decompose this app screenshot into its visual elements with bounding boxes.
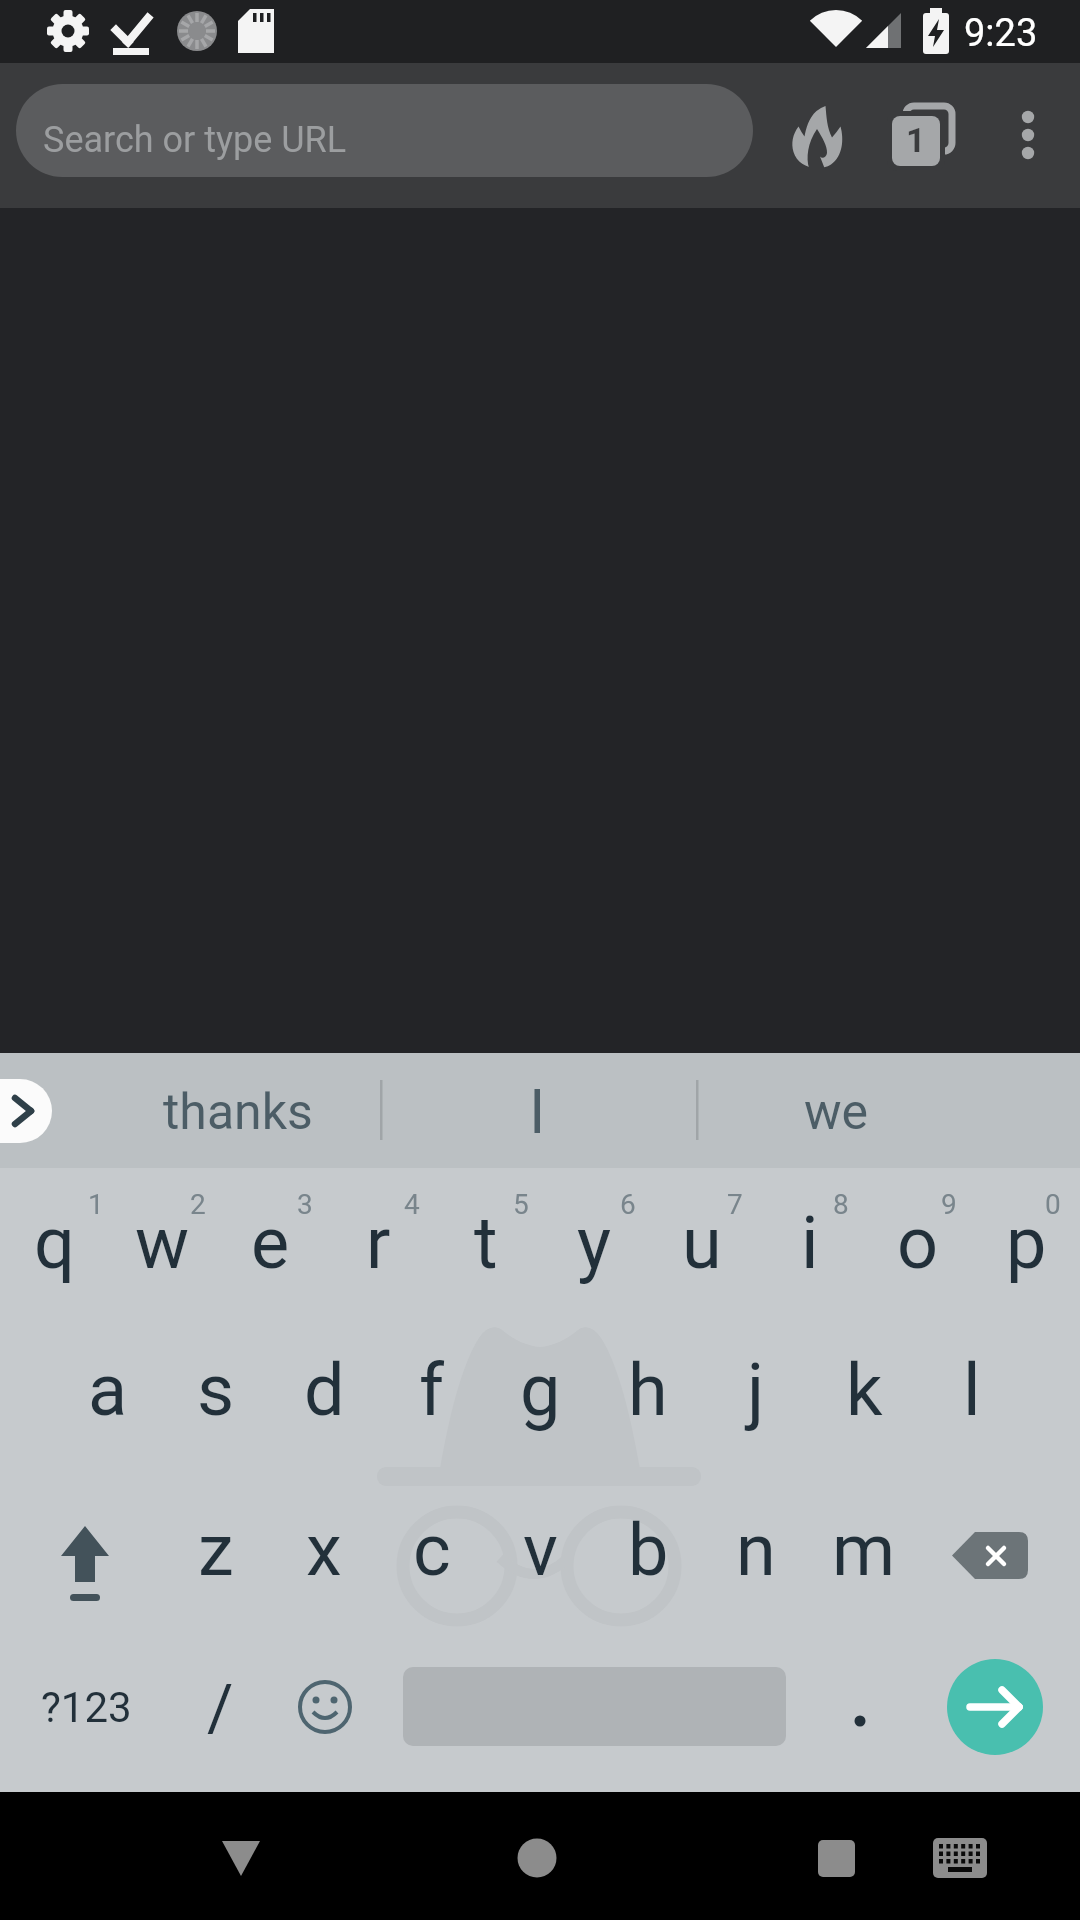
staticText: 8: [833, 1188, 849, 1221]
staticText: t: [474, 1201, 498, 1285]
button[interactable]: e: [216, 1178, 324, 1308]
staticText: n: [736, 1508, 776, 1592]
button[interactable]: [815, 1657, 905, 1757]
button[interactable]: [941, 1497, 1051, 1615]
staticText: l: [963, 1348, 981, 1432]
staticText: h: [628, 1348, 668, 1432]
button[interactable]: c: [378, 1485, 486, 1615]
button[interactable]: s: [162, 1325, 270, 1455]
staticText: i: [801, 1201, 819, 1285]
staticText: b: [628, 1508, 669, 1592]
button[interactable]: l: [918, 1325, 1026, 1455]
staticText: w: [135, 1201, 190, 1285]
staticText: 4: [404, 1188, 420, 1221]
button[interactable]: [941, 1657, 1049, 1757]
button[interactable]: [980, 87, 1076, 183]
staticText: 7: [727, 1188, 743, 1221]
button[interactable]: t: [432, 1178, 540, 1308]
staticText: g: [520, 1348, 561, 1432]
button[interactable]: x: [270, 1485, 378, 1615]
button[interactable]: v: [486, 1485, 594, 1615]
staticText: x: [306, 1508, 342, 1592]
button[interactable]: [769, 87, 865, 183]
button[interactable]: y: [540, 1178, 648, 1308]
button[interactable]: g: [486, 1325, 594, 1455]
button[interactable]: [271, 1657, 379, 1757]
button[interactable]: z: [162, 1485, 270, 1615]
staticText: z: [198, 1508, 234, 1592]
button[interactable]: ?123: [21, 1662, 151, 1752]
staticText: a: [88, 1348, 128, 1432]
button[interactable]: thanks: [123, 1077, 353, 1147]
staticText: r: [366, 1201, 391, 1285]
staticText: m: [832, 1508, 896, 1592]
staticText: o: [897, 1201, 939, 1285]
staticText: c: [413, 1508, 451, 1592]
button[interactable]: i: [756, 1178, 864, 1308]
staticText: u: [682, 1201, 722, 1285]
staticText: p: [1006, 1201, 1047, 1285]
button[interactable]: [420, 1056, 660, 1164]
staticText: s: [197, 1348, 235, 1432]
button[interactable]: [16, 84, 753, 177]
staticText: 5: [513, 1188, 529, 1221]
staticText: q: [34, 1201, 75, 1285]
button[interactable]: b: [594, 1485, 702, 1615]
staticText: e: [251, 1201, 290, 1285]
button[interactable]: p: [972, 1178, 1080, 1308]
button[interactable]: [874, 87, 970, 183]
button[interactable]: r: [324, 1178, 432, 1308]
staticText: f: [419, 1348, 445, 1432]
staticText: 1: [88, 1188, 104, 1221]
button[interactable]: k: [810, 1325, 918, 1455]
staticText: Search or type URL: [43, 119, 347, 161]
staticText: ?123: [41, 1683, 132, 1732]
button[interactable]: [776, 1798, 896, 1918]
button[interactable]: n: [702, 1485, 810, 1615]
button[interactable]: j: [702, 1325, 810, 1455]
button[interactable]: a: [54, 1325, 162, 1455]
button[interactable]: q: [0, 1178, 108, 1308]
staticText: 0: [1045, 1188, 1061, 1221]
staticText: k: [846, 1348, 883, 1432]
staticText: y: [577, 1201, 612, 1285]
button[interactable]: [181, 1798, 301, 1918]
staticText: d: [304, 1348, 345, 1432]
button[interactable]: [900, 1798, 1020, 1918]
staticText: v: [523, 1508, 558, 1592]
button[interactable]: w: [108, 1178, 216, 1308]
button[interactable]: f: [378, 1325, 486, 1455]
staticText: 1: [906, 120, 926, 160]
staticText: 9:23: [964, 11, 1038, 56]
staticText: we: [804, 1083, 869, 1142]
button[interactable]: [477, 1798, 597, 1918]
button[interactable]: d: [270, 1325, 378, 1455]
button[interactable]: [0, 1079, 60, 1143]
button[interactable]: h: [594, 1325, 702, 1455]
button[interactable]: we: [721, 1077, 951, 1147]
staticText: 9: [941, 1188, 957, 1221]
staticText: thanks: [163, 1083, 313, 1142]
staticText: 2: [190, 1188, 206, 1221]
staticText: j: [747, 1348, 765, 1432]
button[interactable]: [31, 1497, 141, 1615]
button[interactable]: u: [648, 1178, 756, 1308]
staticText: 6: [620, 1188, 636, 1221]
button[interactable]: o: [864, 1178, 972, 1308]
staticText: /: [207, 1671, 234, 1746]
button[interactable]: /: [170, 1653, 270, 1763]
button[interactable]: m: [810, 1485, 918, 1615]
staticText: 3: [297, 1188, 313, 1221]
